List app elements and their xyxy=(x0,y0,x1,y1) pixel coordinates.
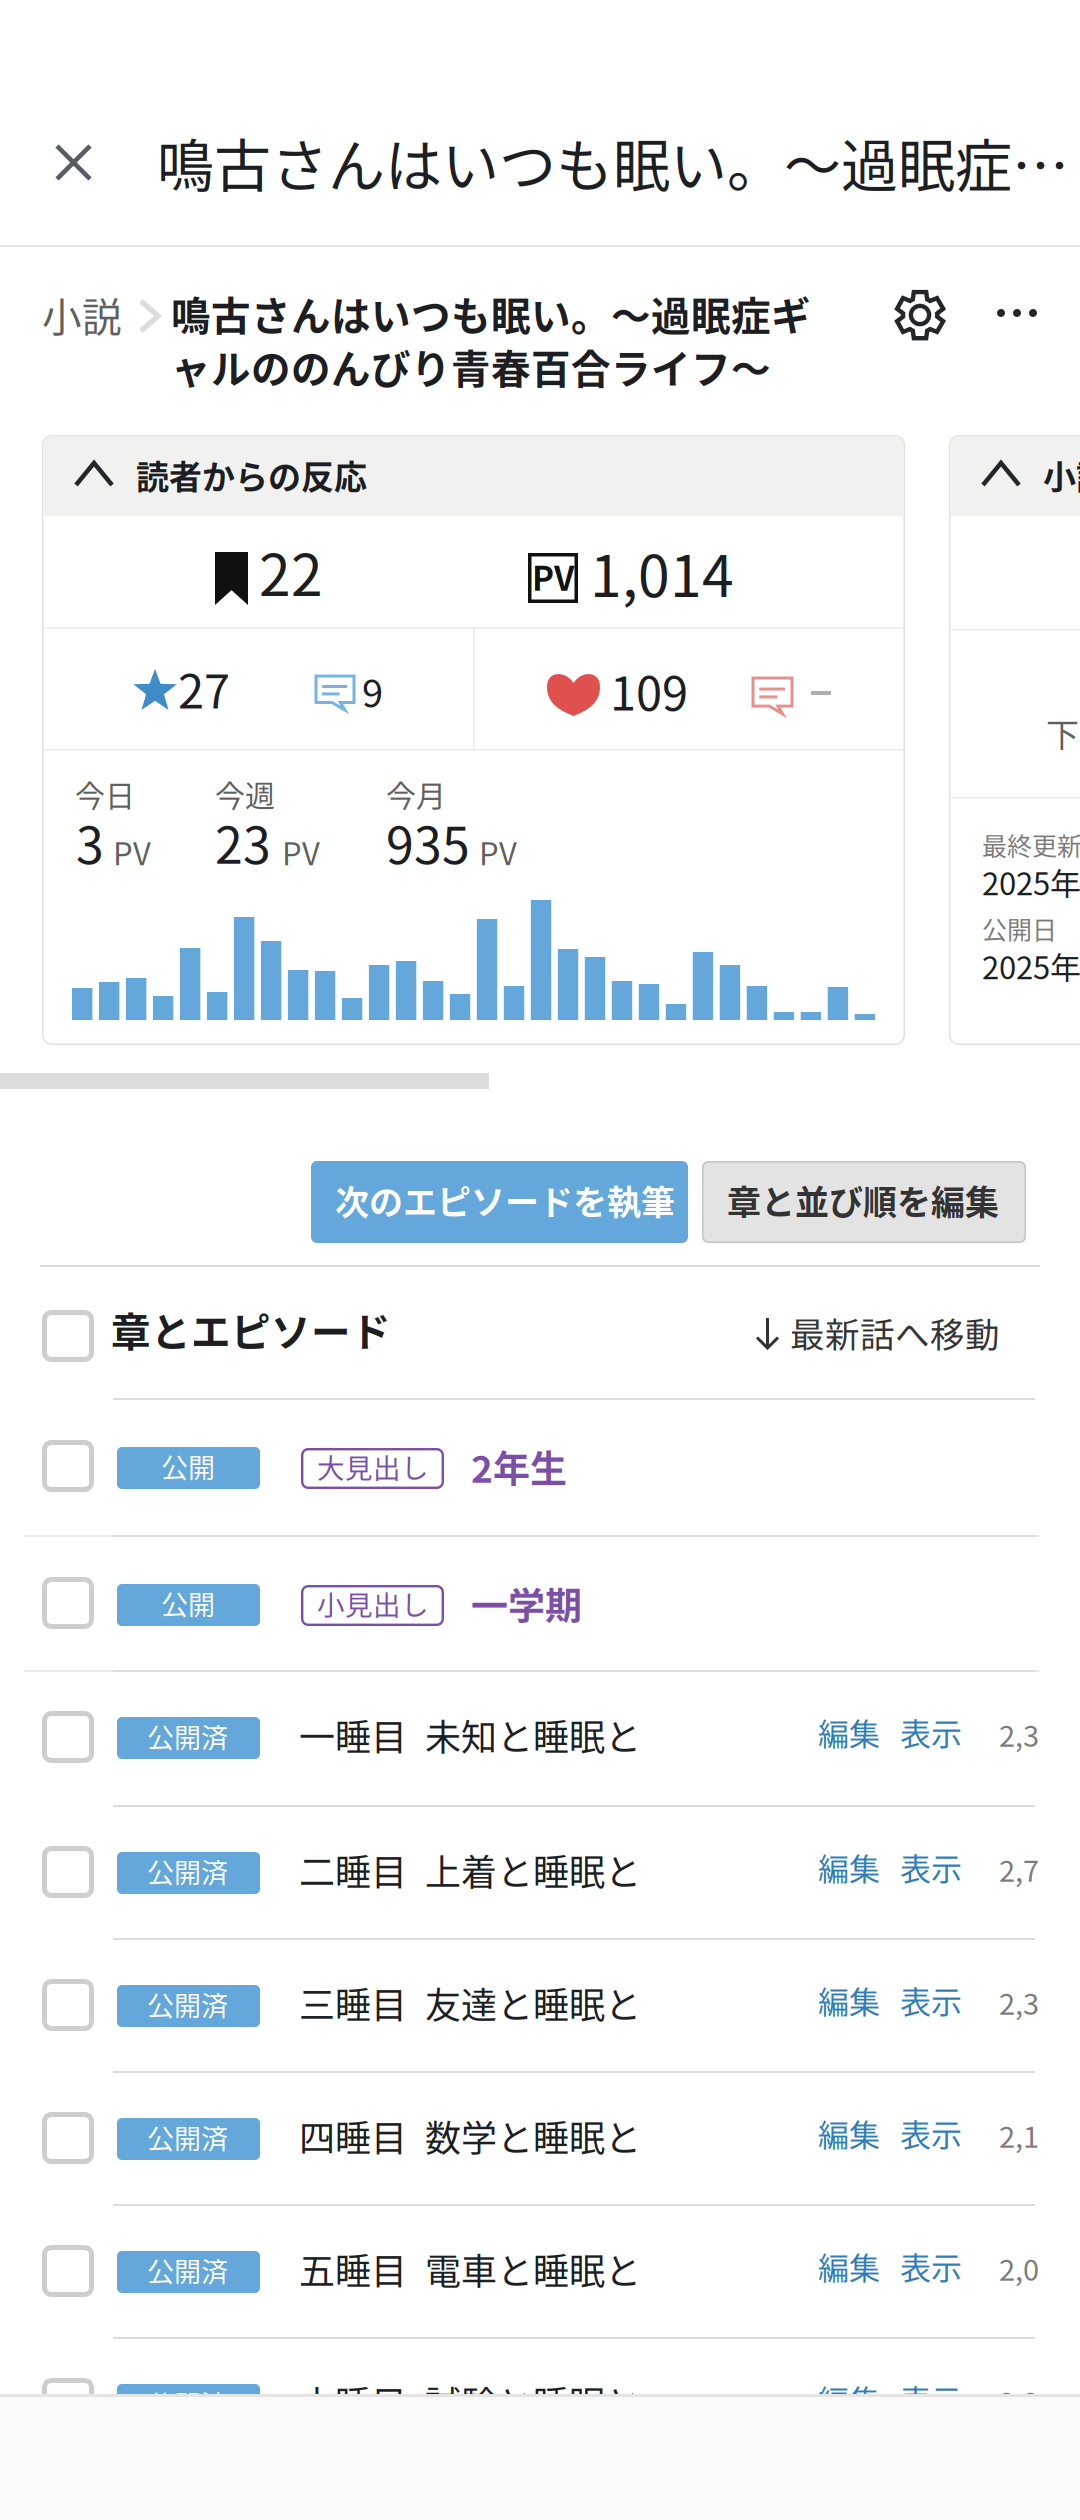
staticText: 2,3 xyxy=(999,1981,1039,2023)
staticText: 読者からの反応 xyxy=(136,451,367,499)
staticText: PV xyxy=(113,829,151,874)
staticText: 五睡目 電車と睡眠と xyxy=(299,2243,641,2295)
staticText: 表示 xyxy=(900,1977,962,2022)
button[interactable]: 次のエピソードを執筆 xyxy=(311,1161,688,1243)
staticText: 公開日 xyxy=(982,910,1057,947)
staticText: 今週 xyxy=(215,772,275,815)
staticText: 2025年4月1日 xyxy=(982,943,1080,988)
button[interactable]: 表示 xyxy=(894,2113,968,2163)
staticText: 今月 xyxy=(386,772,446,815)
button[interactable]: 編集 xyxy=(812,2379,886,2429)
button[interactable]: 読者からの反応 xyxy=(43,436,904,516)
staticText: 2,3 xyxy=(999,1713,1039,1755)
button[interactable]: 選択 xyxy=(42,1846,94,1898)
staticText: 2,7 xyxy=(999,1848,1039,1890)
button[interactable]: 四睡目 数学と睡眠と xyxy=(295,2111,655,2165)
staticText: 今日 xyxy=(75,772,135,815)
staticText: 次のエピソードを執筆 xyxy=(335,1176,675,1225)
button[interactable]: 五睡目 電車と睡眠と xyxy=(295,2244,655,2298)
button[interactable]: 選択 xyxy=(42,1310,94,1362)
staticText: 1,014 xyxy=(590,531,734,613)
staticText: 編集 xyxy=(818,1844,880,1889)
staticText: 小説 xyxy=(42,286,122,343)
button[interactable]: 表示 xyxy=(894,2379,968,2429)
staticText: 編集 xyxy=(818,2243,880,2288)
staticText: 編集 xyxy=(818,1977,880,2022)
button[interactable]: 六睡目 試験と睡眠と xyxy=(295,2377,655,2431)
staticText: 公開済 xyxy=(147,1717,228,1756)
staticText: 一学期 xyxy=(471,1577,582,1630)
button[interactable]: 表示 xyxy=(894,1712,968,1762)
button[interactable]: 編集 xyxy=(812,1847,886,1897)
staticText: 公開 xyxy=(161,1584,215,1623)
button[interactable]: 選択 xyxy=(42,2245,94,2297)
button[interactable]: 選択 xyxy=(42,1440,94,1492)
staticText: 章と並び順を編集 xyxy=(727,1176,999,1225)
staticText: 公開 xyxy=(161,1447,215,1486)
staticText: 大見出し xyxy=(317,1447,429,1486)
button[interactable]: 選択 xyxy=(42,2378,94,2430)
staticText: 109 xyxy=(610,656,688,724)
button[interactable]: 設定 xyxy=(890,285,950,345)
staticText: 小見出し xyxy=(317,1584,429,1623)
staticText: 935 xyxy=(386,806,470,878)
staticText: 二睡目 上着と睡眠と xyxy=(299,1844,641,1896)
staticText: 表示 xyxy=(900,2243,962,2288)
button[interactable]: 章と並び順を編集 xyxy=(702,1161,1026,1243)
staticText: 最新話へ移動 xyxy=(790,1307,1000,1357)
button[interactable]: その他 xyxy=(988,294,1046,332)
staticText: 9 xyxy=(362,663,383,718)
button[interactable]: 選択 xyxy=(42,1711,94,1763)
staticText: 3 xyxy=(76,806,104,878)
staticText: 公開済 xyxy=(147,1985,228,2024)
staticText: 章とエピソード xyxy=(111,1301,391,1358)
staticText: 公開済 xyxy=(147,2384,228,2423)
button[interactable]: 選択 xyxy=(42,1577,94,1629)
staticText: 22 xyxy=(259,530,323,612)
button[interactable]: 表示 xyxy=(894,2246,968,2296)
button[interactable]: 編集 xyxy=(812,2113,886,2163)
staticText: 23 xyxy=(215,806,271,878)
button[interactable]: 二睡目 上着と睡眠と xyxy=(295,1845,655,1899)
staticText: PV xyxy=(479,829,517,874)
button[interactable]: 小説 xyxy=(38,288,126,340)
staticText: 編集 xyxy=(818,2376,880,2421)
staticText: 表示 xyxy=(900,2376,962,2421)
staticText: 一睡目 未知と睡眠と xyxy=(299,1709,641,1761)
staticText: 鳴古さんはいつも眠い。～過眠症… xyxy=(157,121,1069,203)
button[interactable]: 編集 xyxy=(812,1712,886,1762)
button[interactable]: 選択 xyxy=(42,1979,94,2031)
button[interactable]: 小説情報 xyxy=(950,436,1080,516)
staticText: 公開済 xyxy=(147,2118,228,2157)
staticText: 三睡目 友達と睡眠と xyxy=(299,1977,641,2029)
staticText: 2,2 xyxy=(999,2380,1039,2422)
staticText: 27 xyxy=(178,654,230,722)
staticText: ャルののんびり青春百合ライフ～ xyxy=(171,338,771,395)
staticText: PV xyxy=(532,553,574,600)
button[interactable]: 選択 xyxy=(42,2112,94,2164)
button[interactable]: 表示 xyxy=(894,1980,968,2030)
button[interactable]: 表示 xyxy=(894,1847,968,1897)
staticText: 四睡目 数学と睡眠と xyxy=(299,2110,641,2162)
button[interactable]: 編集 xyxy=(812,1980,886,2030)
staticText: 最終更新日 xyxy=(982,826,1080,863)
button[interactable]: 閉じる xyxy=(44,133,106,195)
staticText: 鳴古さんはいつも眠い。～過眠症ギ xyxy=(171,285,811,342)
staticText: 下書き xyxy=(1046,709,1080,757)
button[interactable]: 最新話へ移動 xyxy=(748,1304,1004,1360)
staticText: 表示 xyxy=(900,1844,962,1889)
staticText: 小説情報 xyxy=(1043,451,1080,499)
button[interactable]: 三睡目 友達と睡眠と xyxy=(295,1978,655,2032)
button[interactable]: 鳴古さんはいつも眠い。～過眠症ギャルののんびり青春百合ライフ～ xyxy=(168,286,828,398)
staticText: 表示 xyxy=(900,2110,962,2155)
button[interactable]: 一睡目 未知と睡眠と xyxy=(295,1710,655,1764)
button[interactable]: 一学期 xyxy=(466,1579,686,1631)
button[interactable]: 編集 xyxy=(812,2246,886,2296)
staticText: 編集 xyxy=(818,2110,880,2155)
button[interactable]: 2年生 xyxy=(466,1442,686,1494)
staticText: 公開済 xyxy=(147,2251,228,2290)
staticText: 公開済 xyxy=(147,1852,228,1891)
staticText: 表示 xyxy=(900,1709,962,1754)
staticText: 2,1 xyxy=(999,2114,1039,2156)
staticText: 2,0 xyxy=(999,2247,1039,2289)
